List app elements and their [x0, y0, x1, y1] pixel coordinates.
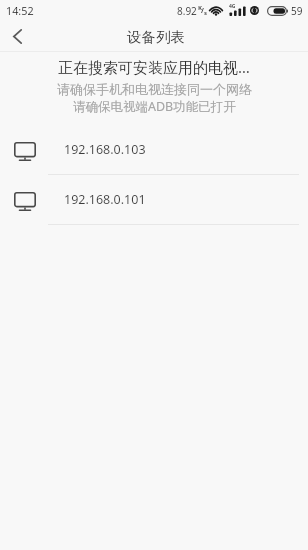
- button[interactable]: 192.168.0.103: [0, 125, 308, 175]
- staticText: s: [204, 9, 208, 17]
- staticText: 192.168.0.101: [64, 191, 146, 208]
- staticText: 请确保电视端ADB功能已打开: [73, 98, 236, 115]
- staticText: 正在搜索可安装应用的电视…: [58, 57, 250, 77]
- staticText: /: [201, 6, 204, 16]
- button[interactable]: 192.168.0.101: [0, 175, 308, 225]
- staticText: 4G: [229, 3, 236, 10]
- staticText: 59: [291, 4, 303, 18]
- staticText: 请确保手机和电视连接同一个网络: [57, 81, 252, 97]
- staticText: K: [198, 4, 202, 12]
- staticText: 设备列表: [127, 28, 185, 46]
- staticText: 14:52: [6, 3, 34, 18]
- staticText: 8.92: [177, 4, 197, 18]
- button[interactable]: [0, 20, 34, 53]
- staticText: 192.168.0.103: [64, 141, 146, 158]
